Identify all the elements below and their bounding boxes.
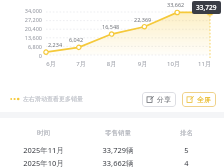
staticText: 33,729 [196,3,217,12]
staticText: 2,234 [48,41,63,48]
staticText: 33,662辆 [81,158,155,167]
staticText: 20,400 [12,25,42,32]
staticText: 27,200 [12,16,42,23]
staticText: 0 [12,52,42,59]
staticText: 16,548 [102,23,120,30]
button[interactable]: 2025年10月 [0,158,224,167]
staticText: 5 [155,145,218,155]
staticText: 时间 [6,129,81,137]
button[interactable]: 2025年11月 [0,141,224,158]
staticText: 10月 [158,60,189,68]
button[interactable]: 33,729 [192,1,221,14]
staticText: 34,000 [12,7,42,14]
staticText: 全屏 [197,95,211,104]
staticText: 22,369 [134,16,152,23]
staticText: 6,800 [12,43,42,50]
button[interactable]: 时间 [0,124,224,141]
staticText: 6,042 [69,36,84,43]
staticText: 6月 [36,60,66,68]
staticText: 零售销量 [81,129,155,137]
staticText: 11月 [189,60,220,68]
staticText: 左右滑动查看更多销量 [23,95,83,103]
button[interactable]: 全屏 [182,92,216,107]
staticText: 9月 [127,60,158,68]
staticText: 排名 [155,129,218,137]
button[interactable]: 分享 [142,92,176,107]
staticText: 2025年11月 [6,145,81,155]
staticText: 分享 [157,95,171,104]
staticText: 33,662 [167,1,185,8]
staticText: 2025年10月 [6,158,81,167]
staticText: 8月 [96,60,127,68]
staticText: 7月 [66,60,96,68]
staticText: 33,729辆 [81,145,155,155]
staticText: 4 [155,158,218,167]
staticText: 13,600 [12,34,42,41]
